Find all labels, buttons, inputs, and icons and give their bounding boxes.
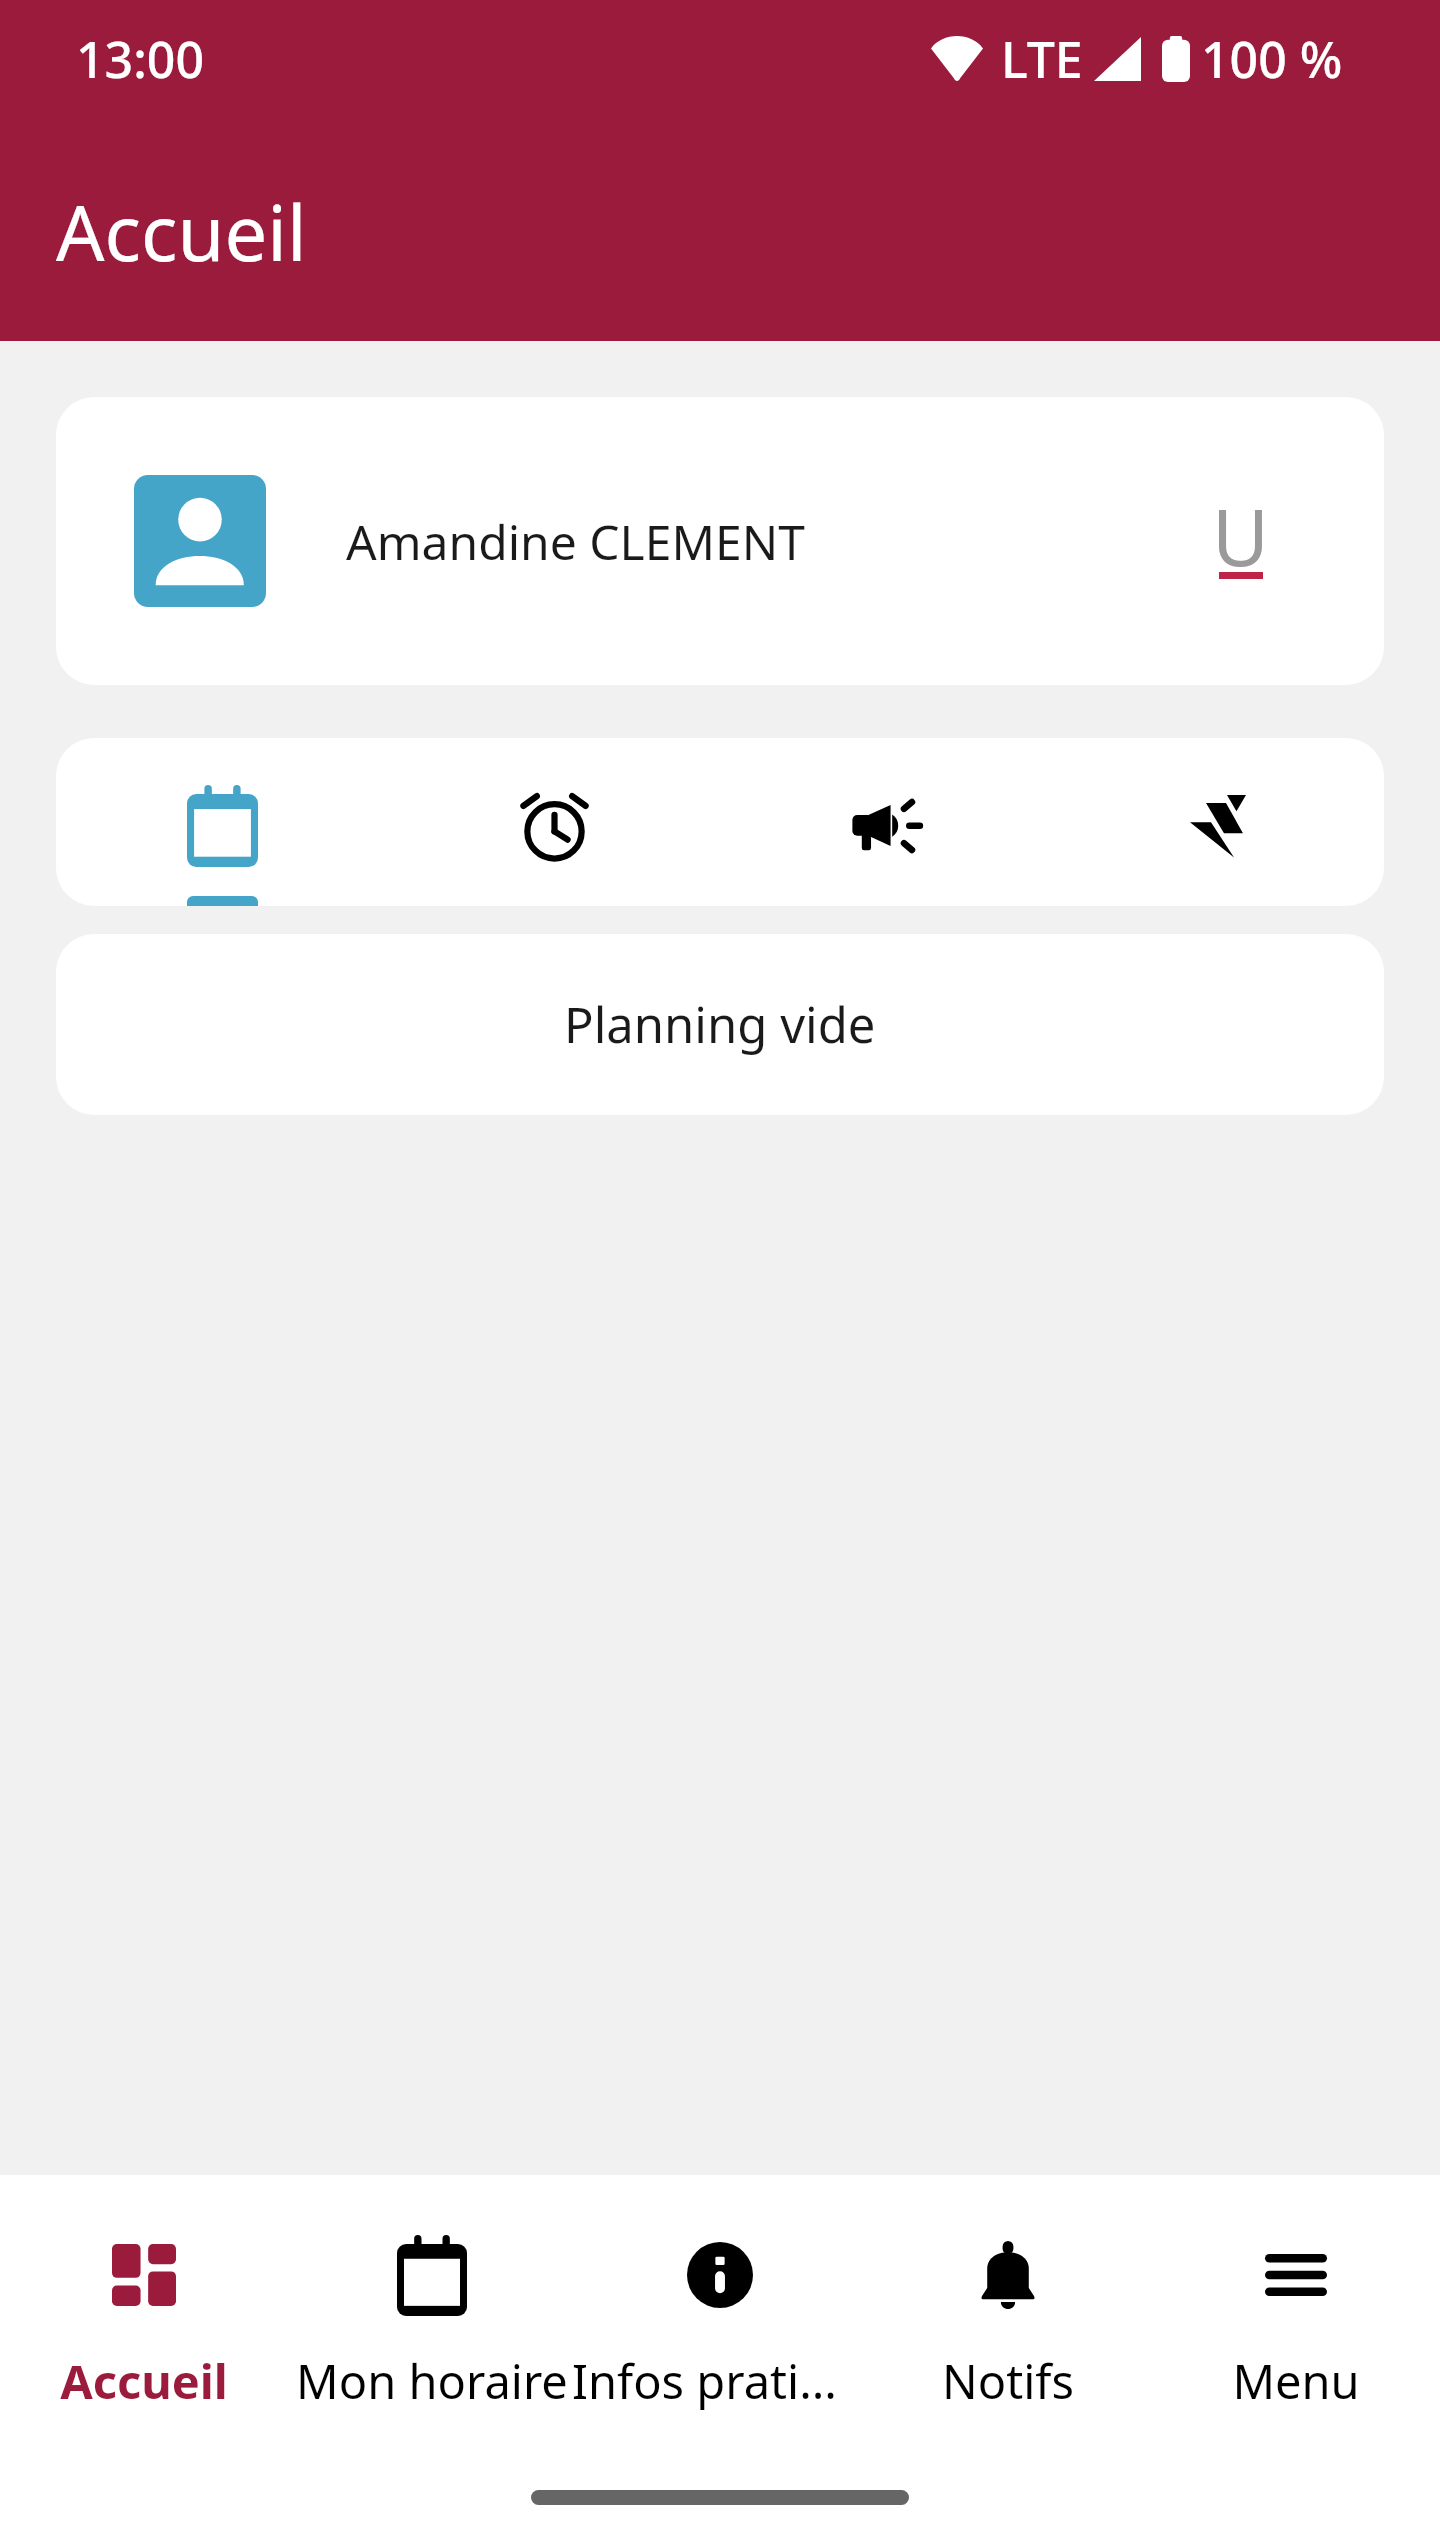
button[interactable]: Logo [1052,738,1384,906]
staticText: Notifs [942,2349,1074,2413]
button[interactable]: Infos prati... [576,2175,864,2425]
button[interactable]: Alarme [388,738,720,906]
staticText: Accueil [56,180,307,284]
staticText: U [1212,483,1270,589]
button[interactable]: Profil utilisateur [1240,397,1308,685]
staticText: 13:00 [76,25,204,93]
button[interactable]: Accueil [0,2175,288,2425]
staticText: Menu [1232,2349,1360,2413]
button[interactable]: Menu [1152,2175,1440,2425]
button[interactable]: Notifs [864,2175,1152,2425]
staticText: Infos prati... [572,2349,837,2413]
staticText: 100 % [1201,25,1343,93]
button[interactable]: Mon horaire [288,2175,576,2425]
staticText: Amandine CLEMENT [346,509,805,574]
staticText: Accueil [60,2349,228,2413]
staticText: LTE [1001,25,1083,93]
button[interactable]: Annonces [720,738,1052,906]
button[interactable]: Planning vide [56,934,1384,1115]
button[interactable]: Amandine CLEMENT [56,397,1384,685]
staticText: Mon horaire [296,2349,568,2413]
button[interactable]: Calendrier [56,738,388,906]
staticText: Planning vide [564,991,876,1058]
